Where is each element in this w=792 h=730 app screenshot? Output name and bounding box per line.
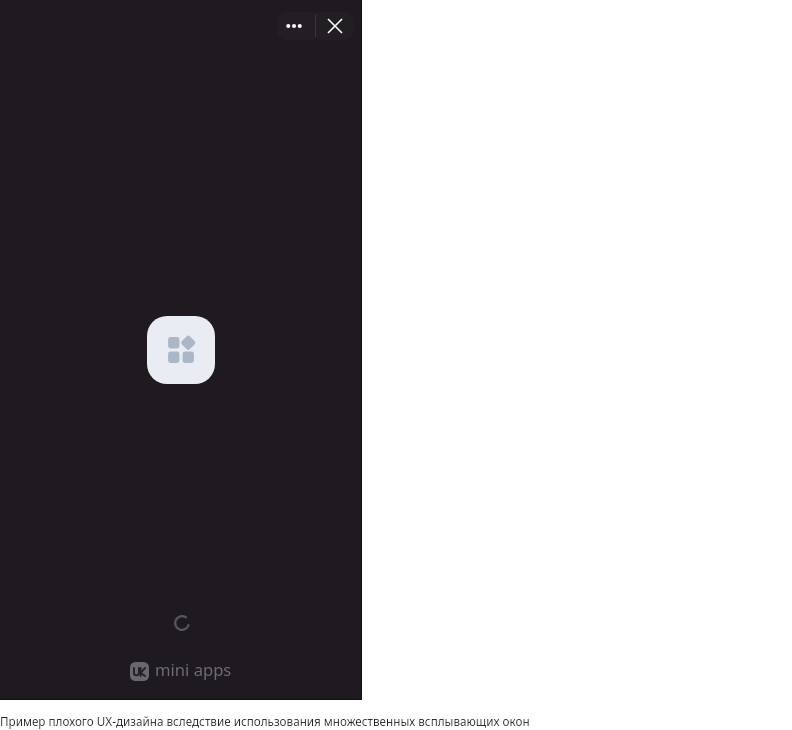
- staticText: mini apps: [155, 658, 232, 681]
- staticText: Пример плохого UX-дизайна вследствие исп…: [0, 713, 530, 729]
- other: Loading: [174, 615, 190, 631]
- button[interactable]: Mini app: [147, 316, 215, 384]
- button[interactable]: Close: [316, 12, 354, 40]
- button[interactable]: mini apps: [130, 660, 232, 683]
- button[interactable]: More options: [277, 12, 315, 40]
